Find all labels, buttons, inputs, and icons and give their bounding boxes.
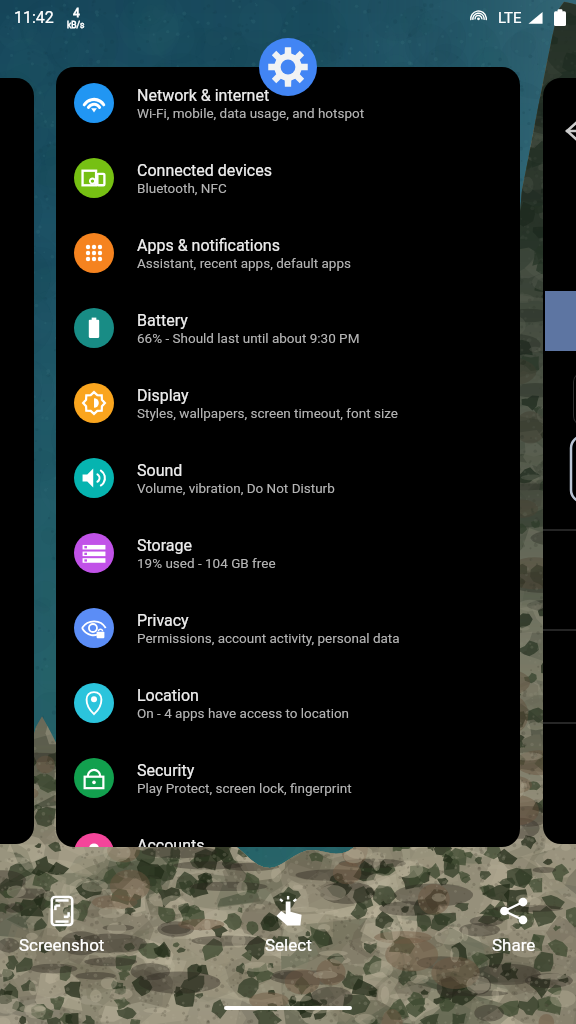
- staticText: Sound: [137, 461, 183, 480]
- button[interactable]: Sound: [56, 440, 520, 515]
- button[interactable]: [0, 78, 34, 844]
- staticText: LTE: [498, 9, 522, 27]
- button[interactable]: Battery: [56, 290, 520, 365]
- staticText: kB/s: [67, 20, 85, 30]
- staticText: Bluetooth, NFC: [137, 180, 227, 196]
- staticText: On - 4 apps have access to location: [137, 705, 350, 721]
- staticText: Volume, vibration, Do Not Disturb: [137, 480, 335, 496]
- button[interactable]: Privacy: [56, 590, 520, 665]
- button[interactable]: Security: [56, 740, 520, 815]
- button[interactable]: Location: [56, 665, 520, 740]
- button[interactable]: Back: [543, 78, 576, 844]
- staticText: Display: [137, 386, 189, 405]
- button[interactable]: Screenshot: [2, 895, 122, 959]
- button[interactable]: Display: [56, 365, 520, 440]
- staticText: Screenshot: [19, 935, 105, 955]
- button[interactable]: Network & internet: [56, 67, 520, 847]
- staticText: Location: [137, 686, 199, 705]
- staticText: Wi-Fi, mobile, data usage, and hotspot: [137, 105, 365, 121]
- staticText: Network & internet: [137, 86, 270, 105]
- button[interactable]: Select: [228, 895, 348, 959]
- staticText: Security: [137, 761, 195, 780]
- staticText: Privacy: [137, 611, 189, 630]
- button[interactable]: Settings app: [259, 38, 317, 96]
- staticText: Assistant, recent apps, default apps: [137, 255, 351, 271]
- button[interactable]: Back: [565, 118, 576, 144]
- staticText: 4: [73, 6, 80, 20]
- button[interactable]: Connected devices: [56, 140, 520, 215]
- staticText: Play Protect, screen lock, fingerprint: [137, 780, 352, 796]
- staticText: Share: [492, 935, 536, 955]
- button[interactable]: Network & internet: [56, 67, 520, 140]
- staticText: 66% - Should last until about 9:30 PM: [137, 330, 360, 346]
- button[interactable]: Apps & notifications: [56, 215, 520, 290]
- staticText: 11:42: [14, 8, 54, 27]
- button[interactable]: Share: [454, 895, 574, 959]
- staticText: Battery: [137, 311, 188, 330]
- other: Hotspot: [470, 9, 487, 26]
- staticText: Select: [265, 935, 312, 955]
- staticText: Accounts: [137, 836, 205, 847]
- staticText: Permissions, account activity, personal …: [137, 630, 400, 646]
- staticText: 19% used - 104 GB free: [137, 555, 276, 571]
- staticText: Storage: [137, 536, 192, 555]
- button[interactable]: Accounts: [56, 815, 520, 847]
- staticText: Connected devices: [137, 161, 272, 180]
- staticText: Styles, wallpapers, screen timeout, font…: [137, 405, 398, 421]
- button[interactable]: Storage: [56, 515, 520, 590]
- staticText: Apps & notifications: [137, 236, 280, 255]
